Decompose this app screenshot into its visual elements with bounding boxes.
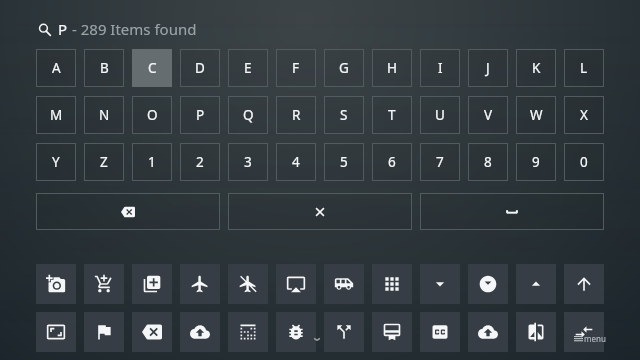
staticText: D [195, 59, 205, 77]
staticText: P [58, 19, 68, 39]
button[interactable]: Z [84, 143, 124, 181]
button[interactable]: Airport shuttle [324, 264, 364, 304]
button[interactable]: 4 [276, 143, 316, 181]
staticText: V [484, 106, 493, 124]
button[interactable]: L [564, 49, 604, 87]
button[interactable]: Aspect ratio [36, 312, 76, 352]
button[interactable]: Apps [372, 264, 412, 304]
button[interactable]: K [516, 49, 556, 87]
button[interactable]: 0 [564, 143, 604, 181]
staticText: L [580, 59, 588, 77]
button[interactable]: Q [228, 96, 268, 134]
button[interactable]: Drop down [420, 264, 460, 304]
staticText: P [196, 106, 205, 124]
button[interactable]: Closed caption [420, 312, 460, 352]
staticText: M [50, 106, 63, 124]
staticText: G [339, 59, 349, 77]
button[interactable]: Airplane mode off [228, 264, 268, 304]
staticText: 7 [436, 153, 444, 171]
button[interactable]: M [36, 96, 76, 134]
button[interactable]: Card membership [372, 312, 412, 352]
staticText: H [387, 59, 398, 77]
button[interactable]: Add shopping cart [84, 264, 124, 304]
staticText: C [148, 59, 157, 77]
staticText: E [244, 59, 252, 77]
staticText: - 289 Items found [72, 19, 197, 39]
button[interactable]: Compare [516, 312, 556, 352]
staticText: 9 [532, 153, 540, 171]
staticText: T [388, 106, 396, 124]
staticText: 5 [340, 153, 348, 171]
button[interactable]: D [180, 49, 220, 87]
button[interactable]: Add a photo [36, 264, 76, 304]
button[interactable]: R [276, 96, 316, 134]
button[interactable]: O [132, 96, 172, 134]
button[interactable]: E [228, 49, 268, 87]
button[interactable]: Drop down circle [468, 264, 508, 304]
button[interactable]: 7 [420, 143, 460, 181]
staticText: U [435, 106, 445, 124]
staticText: Q [243, 106, 254, 124]
button[interactable]: Backup [180, 312, 220, 352]
staticText: A [52, 59, 61, 77]
button[interactable]: 9 [516, 143, 556, 181]
staticText: 1 [148, 153, 156, 171]
button[interactable]: G [324, 49, 364, 87]
button[interactable]: S [324, 96, 364, 134]
button[interactable]: W [516, 96, 556, 134]
button[interactable]: Compare arrows [564, 312, 604, 352]
staticText: X [580, 106, 588, 124]
button[interactable]: U [420, 96, 460, 134]
staticText: B [100, 59, 109, 77]
button[interactable]: 6 [372, 143, 412, 181]
button[interactable]: Bug report [276, 312, 316, 352]
button[interactable]: Backspace [36, 193, 220, 230]
staticText: J [486, 59, 490, 77]
staticText: menu [584, 333, 606, 344]
staticText: W [530, 106, 543, 124]
button[interactable]: Arrow upward [564, 264, 604, 304]
button[interactable]: Y [36, 143, 76, 181]
staticText: 8 [484, 153, 492, 171]
staticText: R [292, 106, 301, 124]
button[interactable]: A [36, 49, 76, 87]
button[interactable]: P [180, 96, 220, 134]
button[interactable]: 5 [324, 143, 364, 181]
button[interactable]: 1 [132, 143, 172, 181]
button[interactable]: F [276, 49, 316, 87]
button[interactable]: H [372, 49, 412, 87]
staticText: 0 [580, 153, 588, 171]
staticText: O [147, 106, 158, 124]
button[interactable]: Airplay [276, 264, 316, 304]
staticText: 4 [292, 153, 300, 171]
button[interactable]: I [420, 49, 460, 87]
button[interactable]: Space [420, 193, 604, 230]
button[interactable]: J [468, 49, 508, 87]
staticText: K [532, 59, 541, 77]
button[interactable]: Clear [228, 193, 412, 230]
button[interactable]: X [564, 96, 604, 134]
button[interactable]: V [468, 96, 508, 134]
button[interactable]: Add to photos [132, 264, 172, 304]
staticText: Y [52, 153, 60, 171]
staticText: 2 [196, 153, 204, 171]
staticText: 3 [244, 153, 252, 171]
button[interactable]: C [132, 49, 172, 87]
button[interactable]: Cloud upload [468, 312, 508, 352]
button[interactable]: B [84, 49, 124, 87]
button[interactable]: Call split [324, 312, 364, 352]
staticText: Z [100, 153, 108, 171]
button[interactable]: Border all [228, 312, 268, 352]
button[interactable]: Backspace [132, 312, 172, 352]
staticText: N [99, 106, 110, 124]
button[interactable]: Drop up [516, 264, 556, 304]
button[interactable]: 3 [228, 143, 268, 181]
other: Scroll down [311, 333, 323, 345]
button[interactable]: 8 [468, 143, 508, 181]
button[interactable]: Airplane mode [180, 264, 220, 304]
button[interactable]: T [372, 96, 412, 134]
staticText: S [340, 106, 348, 124]
button[interactable]: Flag [84, 312, 124, 352]
button[interactable]: N [84, 96, 124, 134]
button[interactable]: 2 [180, 143, 220, 181]
